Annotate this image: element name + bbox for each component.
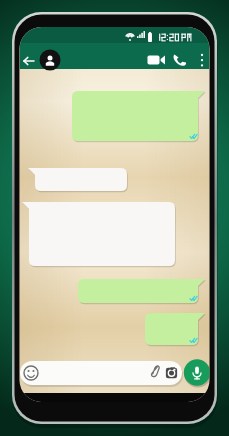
button[interactable]: Attach file [147,365,162,381]
button[interactable]: Voice call [171,51,189,69]
button[interactable]: Emoji [23,365,39,381]
button[interactable]: Type a message [20,361,182,385]
button[interactable]: Record voice message [184,359,211,386]
button[interactable]: Back [21,51,38,67]
button[interactable]: Video call [145,52,167,69]
button[interactable]: More options [195,50,209,69]
button[interactable]: Camera [164,365,179,380]
button[interactable]: Contact profile photo [39,49,61,71]
